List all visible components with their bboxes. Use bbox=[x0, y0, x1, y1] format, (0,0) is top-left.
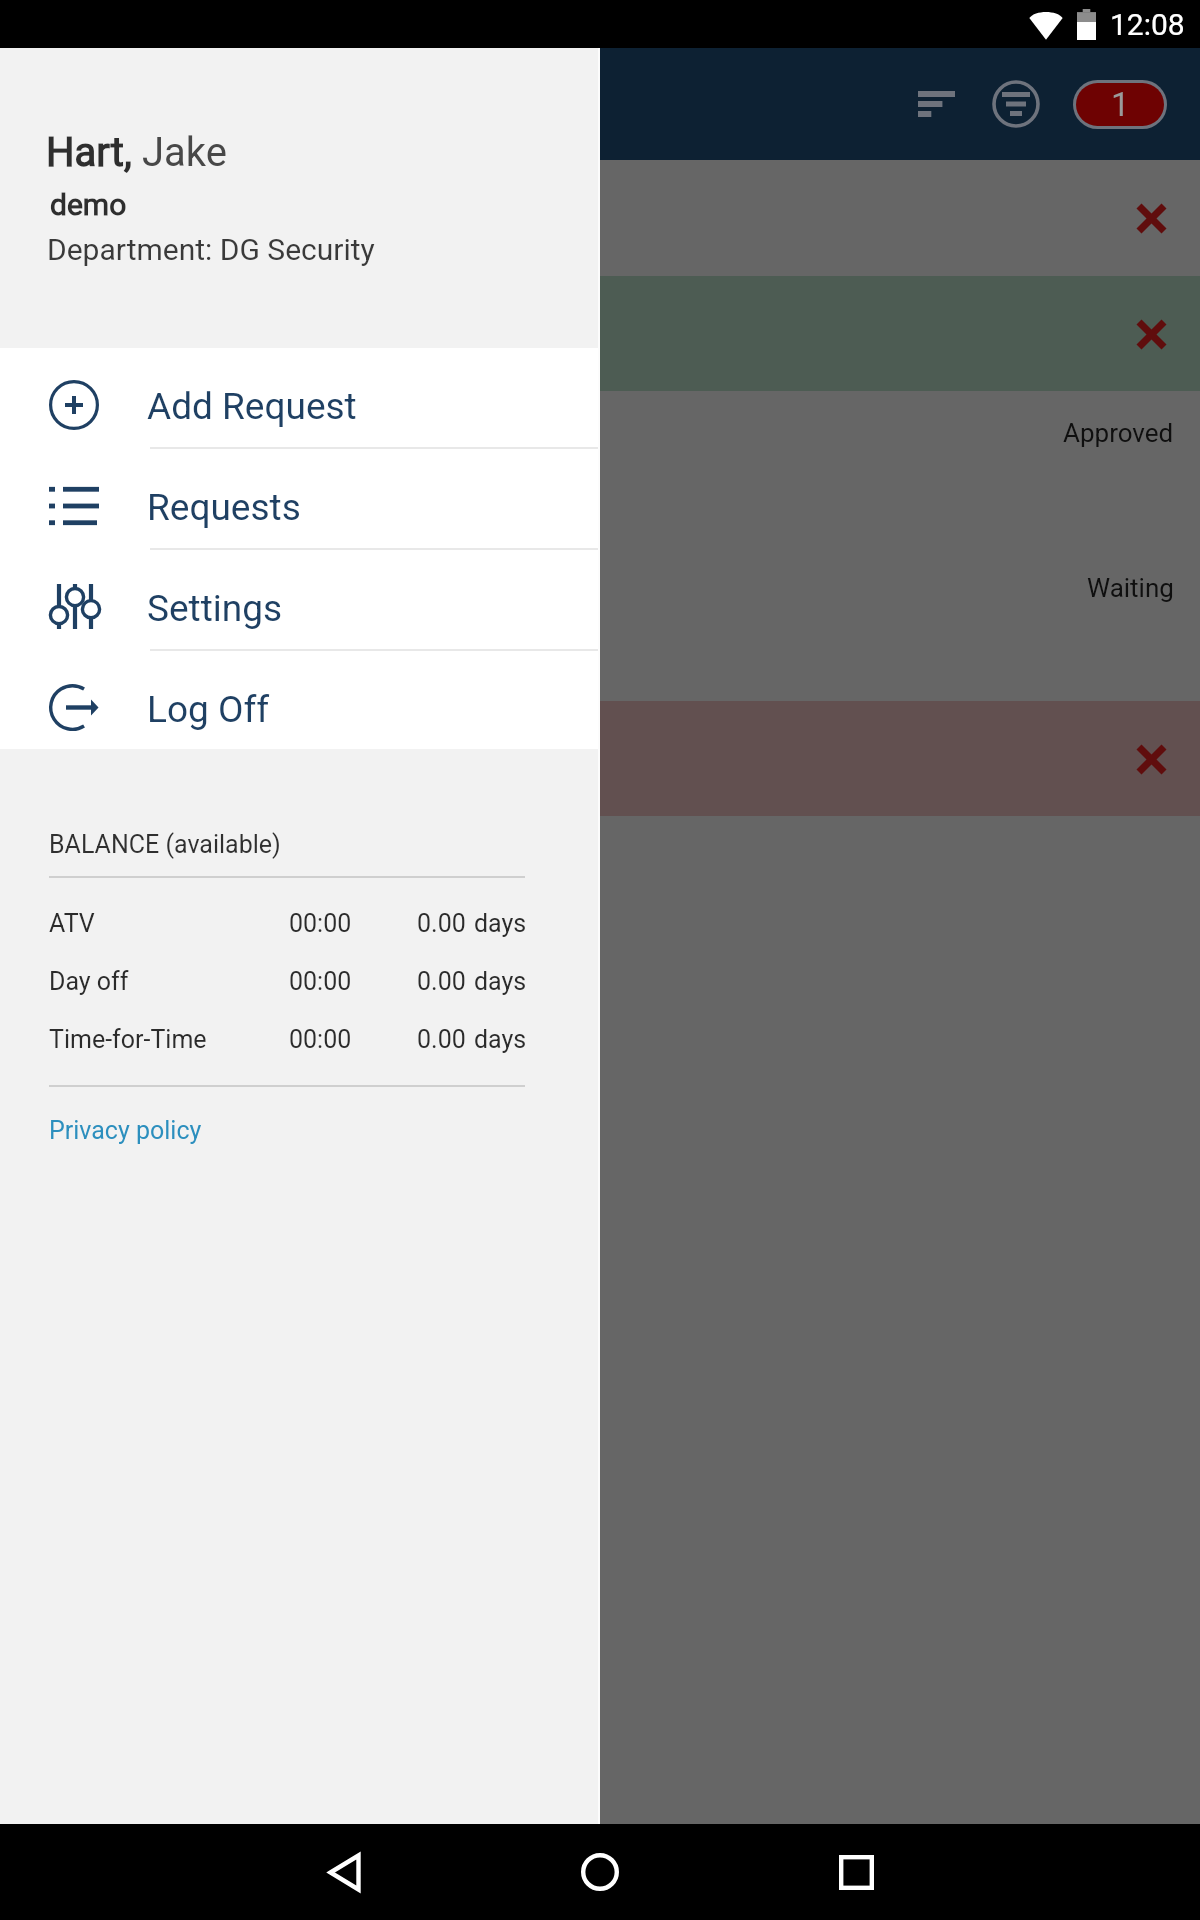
staticText: Jake bbox=[132, 129, 227, 176]
staticText: Privacy policy bbox=[49, 1116, 202, 1145]
staticText: Day off bbox=[49, 967, 129, 996]
button[interactable]: Approved bbox=[1063, 418, 1174, 448]
staticText: Hart, bbox=[46, 129, 132, 176]
button[interactable]: Waiting bbox=[1087, 573, 1174, 603]
button[interactable]: Cancel request bbox=[0, 701, 1200, 816]
button[interactable]: Cancel request bbox=[1120, 728, 1182, 790]
staticText: Approved bbox=[1063, 418, 1174, 448]
button[interactable]: Approved bbox=[0, 391, 1200, 546]
button[interactable]: Home bbox=[552, 1824, 648, 1920]
staticText: Requests bbox=[147, 486, 301, 529]
button[interactable]: Cancel request bbox=[0, 276, 1200, 391]
button[interactable]: Add Request bbox=[0, 348, 600, 447]
button[interactable]: Cancel request bbox=[1120, 187, 1182, 249]
staticText: 00:00 bbox=[289, 967, 352, 996]
button[interactable]: Filter bbox=[977, 48, 1055, 160]
staticText: days bbox=[474, 967, 527, 996]
button[interactable]: Cancel request bbox=[0, 160, 1200, 276]
button[interactable]: Cancel request bbox=[1120, 303, 1182, 365]
button[interactable]: Settings bbox=[0, 550, 600, 649]
staticText: demo bbox=[50, 187, 127, 222]
button[interactable]: Requests bbox=[0, 449, 600, 548]
staticText: 00:00 bbox=[289, 909, 352, 938]
button[interactable]: Waiting bbox=[0, 546, 1200, 701]
staticText: Log Off bbox=[147, 688, 270, 731]
staticText: 12:08 bbox=[1110, 7, 1185, 42]
button[interactable]: 1 bbox=[1076, 83, 1164, 126]
staticText: ATV bbox=[49, 909, 95, 938]
button[interactable]: Back bbox=[296, 1824, 392, 1920]
staticText: 0.00 bbox=[417, 909, 466, 938]
staticText: days bbox=[474, 1025, 527, 1054]
staticText: 0.00 bbox=[417, 967, 466, 996]
staticText: Time-for-Time bbox=[49, 1025, 207, 1054]
staticText: Settings bbox=[147, 587, 283, 630]
staticText: Add Request bbox=[147, 385, 357, 428]
staticText: days bbox=[474, 909, 527, 938]
staticText: Waiting bbox=[1087, 573, 1174, 603]
staticText: Department: DG Security bbox=[47, 232, 375, 267]
staticText: 1 bbox=[1111, 85, 1130, 124]
button[interactable]: Sort bbox=[895, 48, 977, 160]
button[interactable]: Recents bbox=[808, 1824, 904, 1920]
button[interactable]: Privacy policy bbox=[49, 1116, 202, 1145]
staticText: 0.00 bbox=[417, 1025, 466, 1054]
button[interactable]: Log Off bbox=[0, 651, 600, 749]
staticText: 00:00 bbox=[289, 1025, 352, 1054]
staticText: BALANCE (available) bbox=[49, 830, 281, 859]
